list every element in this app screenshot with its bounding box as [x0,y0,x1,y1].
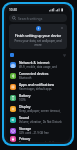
staticText: Battery [19,93,31,97]
staticText: Apps and notifications [19,82,55,86]
button[interactable]: Network & internet [6,59,70,70]
staticText: Sleep, wallpaper, screen timeout, font s… [19,109,66,113]
staticText: Search settings [18,16,43,21]
button[interactable]: Search settings [9,14,67,22]
button[interactable]: Apps and notifications [6,81,70,92]
staticText: Network & internet [19,60,50,64]
staticText: 32% used - 21.9 GB free [19,131,49,135]
button[interactable]: Privacy [6,136,70,142]
staticText: 10:30 [9,8,18,12]
button[interactable]: Finish setting up your device [9,24,67,49]
staticText: Press your data, set wallpaper, and more [12,39,64,47]
staticText: Storage [19,126,32,130]
staticText: Privacy [19,136,31,140]
staticText: Connected devices [19,71,49,75]
staticText: Wi-Fi, mobile, data usage, and hotspot [19,65,66,69]
staticText: Permissions, account activity, personal … [19,141,66,142]
button[interactable]: More options [62,53,66,57]
staticText: Sound [19,115,30,119]
button[interactable]: Sound [6,114,70,125]
button[interactable]: Dismiss suggestion [60,26,64,30]
staticText: Finish setting up your device [12,33,64,38]
staticText: 100% [19,98,26,102]
button[interactable]: Display [6,103,70,114]
staticText: Recent apps, default apps [19,87,52,91]
staticText: Volume, vibration, Do Not Disturb [19,120,62,124]
button[interactable]: Storage [6,125,70,136]
button[interactable]: Battery [6,92,70,103]
staticText: Display [19,104,31,108]
staticText: Bluetooth [19,76,32,80]
button[interactable]: Connected devices [6,70,70,81]
button[interactable]: Account [10,53,14,57]
